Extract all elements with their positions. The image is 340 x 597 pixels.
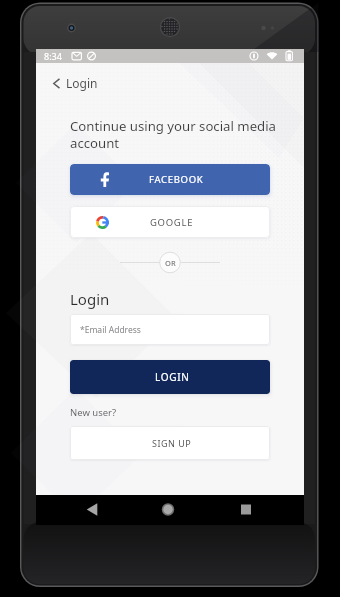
staticText: New user?: [70, 406, 117, 419]
button[interactable]: *Email Address: [70, 314, 270, 345]
staticText: 8:34: [44, 50, 62, 62]
staticText: *Email Address: [80, 324, 141, 336]
button[interactable]: SIGN UP: [70, 426, 270, 460]
staticText: Login: [66, 75, 98, 91]
button[interactable]: GOOGLE: [70, 206, 270, 238]
staticText: OR: [165, 258, 176, 268]
staticText: Login: [70, 289, 110, 309]
button[interactable]: Login: [51, 75, 98, 91]
staticText: LOGIN: [155, 370, 190, 384]
button[interactable]: FACEBOOK: [70, 164, 270, 195]
staticText: Continue using your social media account: [70, 117, 282, 152]
staticText: SIGN UP: [152, 437, 192, 449]
button[interactable]: LOGIN: [70, 360, 270, 394]
staticText: FACEBOOK: [149, 173, 204, 186]
staticText: GOOGLE: [150, 216, 194, 229]
